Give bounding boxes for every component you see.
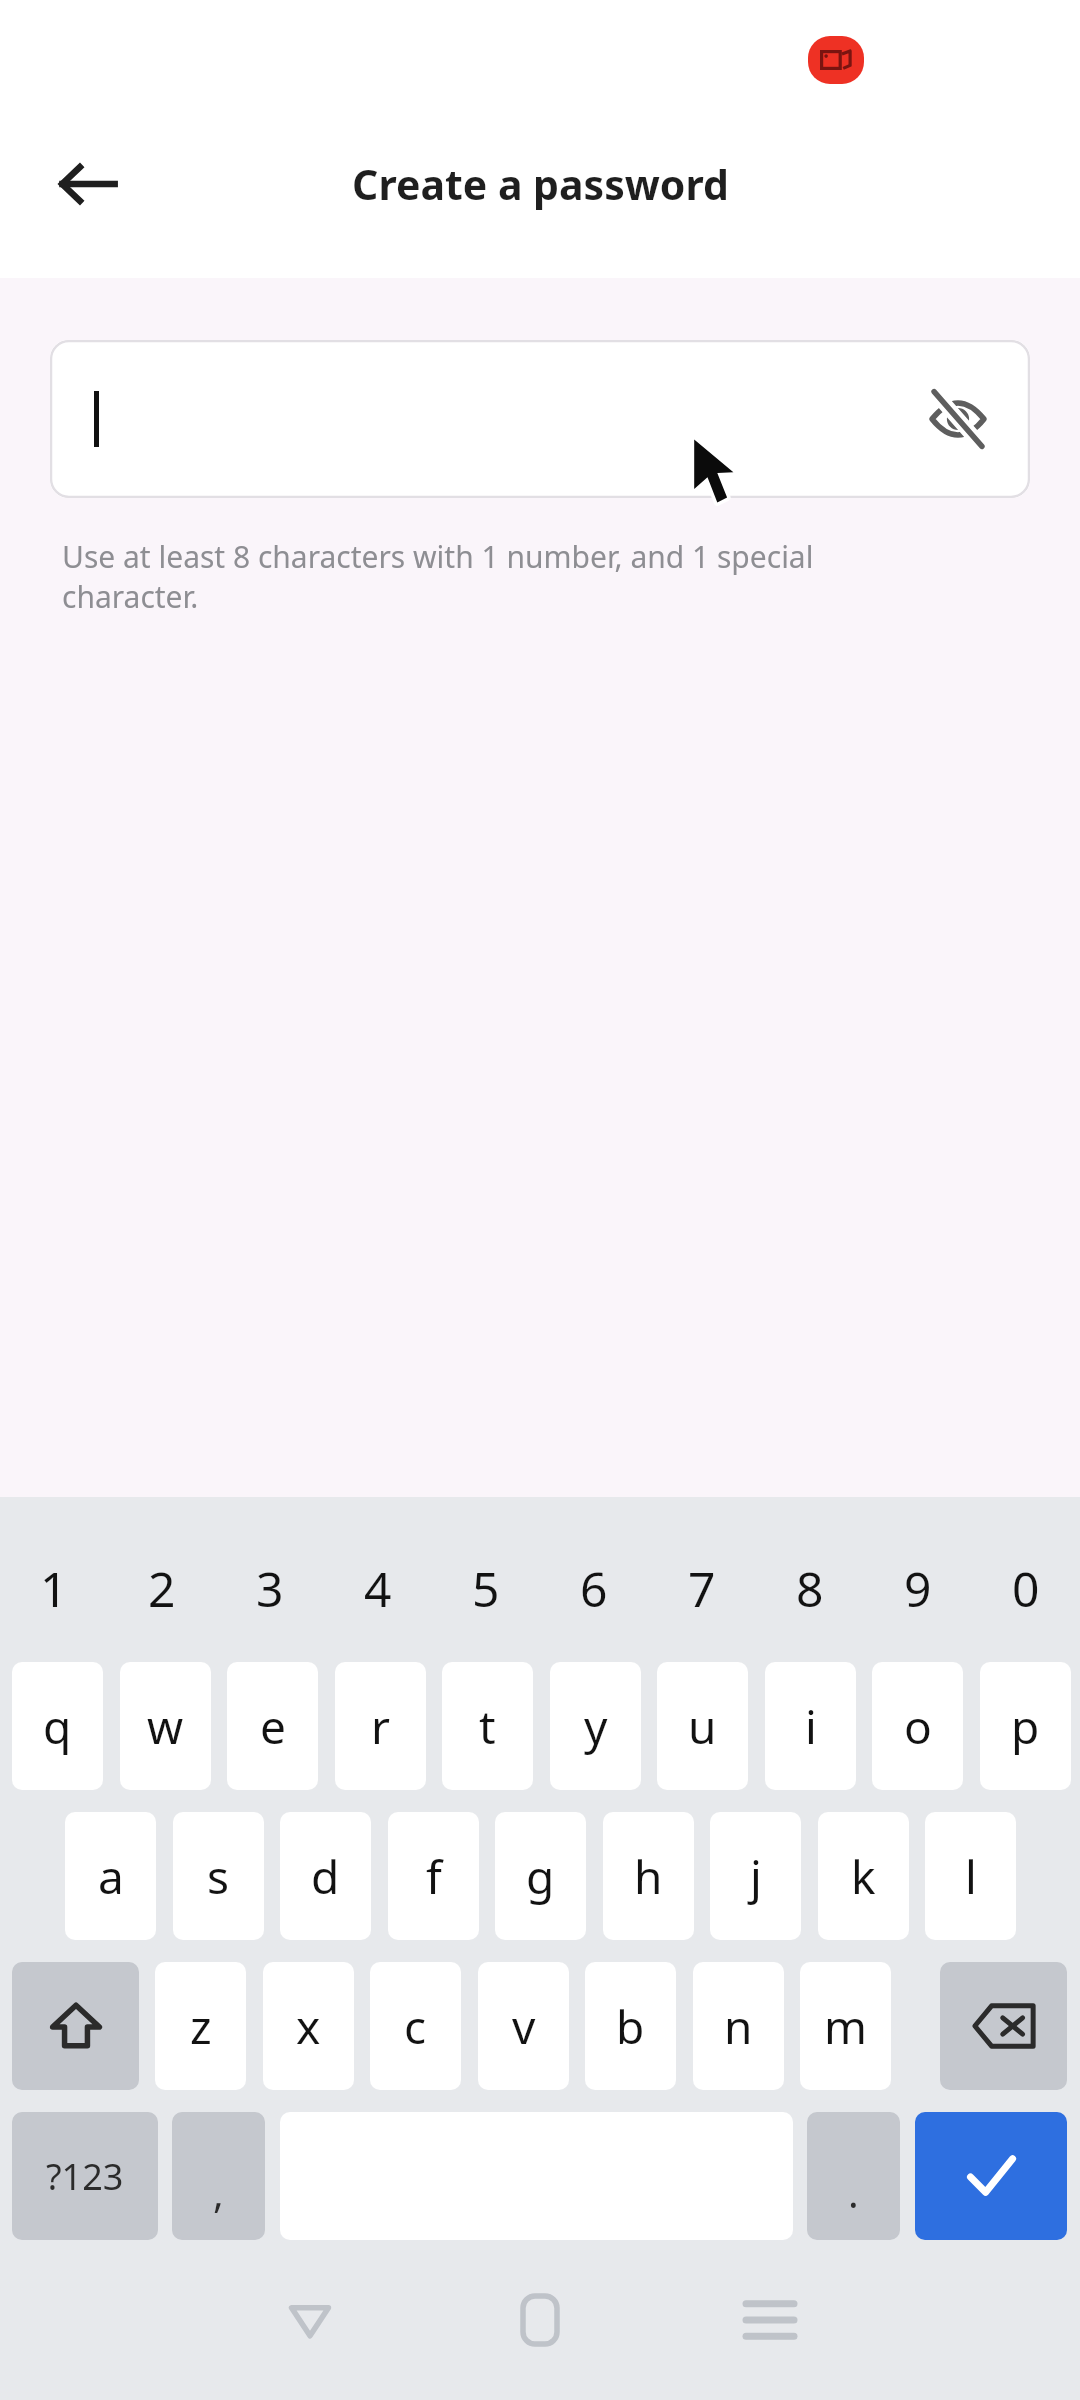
staticText: r xyxy=(371,1695,390,1758)
staticText: d xyxy=(311,1845,340,1908)
staticText: 5 xyxy=(472,1556,500,1621)
button[interactable]: t xyxy=(442,1662,533,1790)
staticText: u xyxy=(688,1695,717,1758)
button[interactable]: . xyxy=(807,2112,900,2240)
button[interactable]: 6 xyxy=(540,1519,648,1657)
button[interactable]: 1 xyxy=(0,1519,108,1657)
staticText: 2 xyxy=(148,1556,176,1621)
staticText: 1 xyxy=(40,1556,68,1621)
button[interactable]: 7 xyxy=(648,1519,756,1657)
button[interactable]: Hide password xyxy=(50,340,1030,498)
staticText: c xyxy=(404,1995,427,2058)
staticText: j xyxy=(750,1845,762,1908)
staticText: . xyxy=(848,2165,859,2219)
staticText: w xyxy=(147,1695,184,1758)
button[interactable]: 3 xyxy=(216,1519,324,1657)
button[interactable]: w xyxy=(120,1662,211,1790)
button[interactable]: i xyxy=(765,1662,856,1790)
button[interactable]: 9 xyxy=(864,1519,972,1657)
staticText: t xyxy=(479,1695,496,1758)
button[interactable]: ?123 xyxy=(12,2112,158,2240)
button[interactable]: 5 xyxy=(432,1519,540,1657)
staticText: Use at least 8 characters with 1 number,… xyxy=(62,536,814,617)
button[interactable]: d xyxy=(280,1812,371,1940)
staticText: v xyxy=(512,1995,536,2058)
staticText: n xyxy=(724,1995,753,2058)
button[interactable]: g xyxy=(495,1812,586,1940)
staticText: 6 xyxy=(580,1556,608,1621)
button[interactable]: r xyxy=(335,1662,426,1790)
button[interactable]: z xyxy=(155,1962,246,2090)
button[interactable]: Shift xyxy=(12,1962,139,2090)
staticText: i xyxy=(805,1695,817,1758)
staticText: Create a password xyxy=(352,156,729,212)
staticText: 8 xyxy=(796,1556,824,1621)
button[interactable]: Recent apps xyxy=(715,2265,825,2375)
button[interactable]: Backspace xyxy=(940,1962,1067,2090)
button[interactable]: m xyxy=(800,1962,891,2090)
button[interactable]: b xyxy=(585,1962,676,2090)
staticText: s xyxy=(207,1845,230,1908)
staticText: , xyxy=(213,2165,224,2219)
button[interactable]: q xyxy=(12,1662,103,1790)
staticText: e xyxy=(260,1695,286,1758)
staticText: k xyxy=(851,1845,876,1908)
staticText: q xyxy=(43,1695,72,1758)
staticText: a xyxy=(98,1845,124,1908)
button[interactable]: n xyxy=(693,1962,784,2090)
button[interactable]: Hide password xyxy=(910,371,1006,467)
staticText: l xyxy=(965,1845,977,1908)
button[interactable]: 2 xyxy=(108,1519,216,1657)
staticText: 0 xyxy=(1012,1556,1040,1621)
button[interactable]: k xyxy=(818,1812,909,1940)
button[interactable]: f xyxy=(388,1812,479,1940)
button[interactable]: Back xyxy=(36,132,140,236)
button[interactable]: v xyxy=(478,1962,569,2090)
button[interactable]: l xyxy=(925,1812,1016,1940)
button[interactable]: u xyxy=(657,1662,748,1790)
button[interactable]: , xyxy=(172,2112,265,2240)
staticText: g xyxy=(526,1845,555,1908)
staticText: y xyxy=(584,1695,608,1758)
staticText: m xyxy=(824,1995,868,2058)
button[interactable]: Back xyxy=(255,2265,365,2375)
button[interactable]: e xyxy=(227,1662,318,1790)
button[interactable]: 8 xyxy=(756,1519,864,1657)
staticText: o xyxy=(904,1695,932,1758)
staticText: 9 xyxy=(904,1556,932,1621)
button[interactable]: Home xyxy=(485,2265,595,2375)
staticText: x xyxy=(296,1995,321,2058)
button[interactable]: o xyxy=(872,1662,963,1790)
staticText: ?123 xyxy=(46,2152,124,2201)
staticText: 3 xyxy=(256,1556,284,1621)
button[interactable]: h xyxy=(603,1812,694,1940)
button[interactable]: s xyxy=(173,1812,264,1940)
staticText: 4 xyxy=(364,1556,392,1621)
staticText: f xyxy=(426,1845,442,1908)
button[interactable]: y xyxy=(550,1662,641,1790)
button[interactable]: a xyxy=(65,1812,156,1940)
staticText: z xyxy=(190,1995,212,2058)
staticText: h xyxy=(634,1845,663,1908)
button[interactable]: p xyxy=(980,1662,1071,1790)
button[interactable]: Enter xyxy=(915,2112,1067,2240)
button[interactable]: c xyxy=(370,1962,461,2090)
staticText: b xyxy=(616,1995,645,2058)
button[interactable]: 4 xyxy=(324,1519,432,1657)
button[interactable]: x xyxy=(263,1962,354,2090)
button[interactable]: j xyxy=(710,1812,801,1940)
staticText: 7 xyxy=(688,1556,716,1621)
staticText: p xyxy=(1011,1695,1040,1758)
button[interactable]: 0 xyxy=(972,1519,1080,1657)
